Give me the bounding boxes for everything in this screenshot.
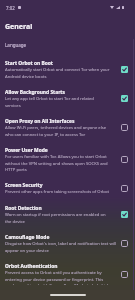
button[interactable]: Allow Background Starts [0,84,135,113]
staticText: For users familiar with Tor. Allows you … [5,154,108,172]
staticText: Open Proxy on All Interfaces [5,118,75,125]
staticText: 7:02 [6,5,15,11]
staticText: Screen Security [5,182,43,189]
button[interactable]: Start Orbot on Boot [0,55,135,84]
button[interactable]: Camouflage Mode [0,229,135,258]
button[interactable]: Screen Security [0,177,135,200]
staticText: Orbot Authentication [5,263,58,270]
staticText: Root Detection [5,205,42,212]
staticText: Warn on startup if root permissions are … [5,212,106,224]
staticText: Disguise how Orbot's icon, label and not… [5,241,116,253]
staticText: Language [5,42,27,48]
staticText: Allow Wi-Fi peers, tethered devices and … [5,125,107,137]
staticText: Automatically start Orbot and connect To… [5,67,110,79]
staticText: Prevent access to Orbot until you authen… [5,270,111,285]
staticText: Power User Mode [5,147,48,154]
staticText: Camouflage Mode [5,234,50,241]
button[interactable]: Orbot Authentication [0,258,135,290]
staticText: Start Orbot on Boot [5,60,53,67]
button[interactable]: Root Detection [0,200,135,229]
button[interactable]: Language [0,39,135,55]
button[interactable]: Open Proxy on All Interfaces [0,113,135,142]
staticText: Allow Background Starts [5,89,65,96]
button[interactable]: Power User Mode [0,142,135,177]
staticText: Prevent other apps from taking screensho… [5,189,109,195]
staticText: Let any app tell Orbot to start Tor and … [5,96,94,108]
staticText: General [5,22,33,32]
